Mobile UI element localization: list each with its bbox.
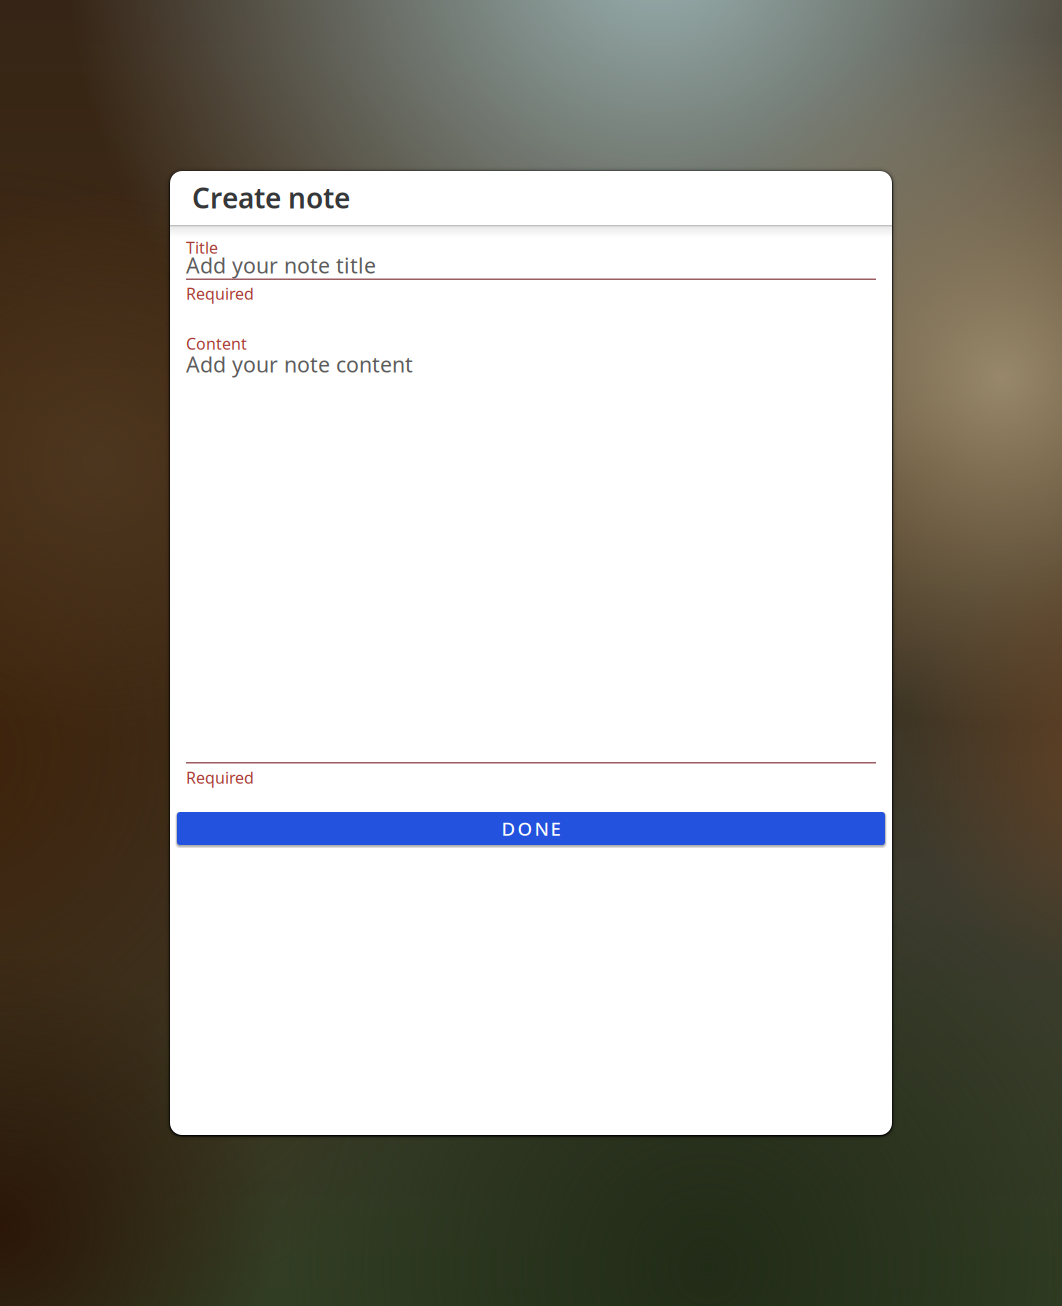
button[interactable]: Content [186, 333, 876, 801]
staticText: Add your note title [186, 251, 376, 279]
staticText: Title [186, 237, 218, 258]
staticText: Required [186, 767, 254, 788]
staticText: Create note [192, 179, 350, 216]
staticText: Add your note content [186, 350, 413, 378]
staticText: Required [186, 283, 254, 304]
staticText: D O N E [501, 816, 560, 841]
button[interactable]: Title [186, 237, 876, 299]
button[interactable]: D O N E [175, 809, 887, 847]
staticText: Content [186, 333, 247, 354]
